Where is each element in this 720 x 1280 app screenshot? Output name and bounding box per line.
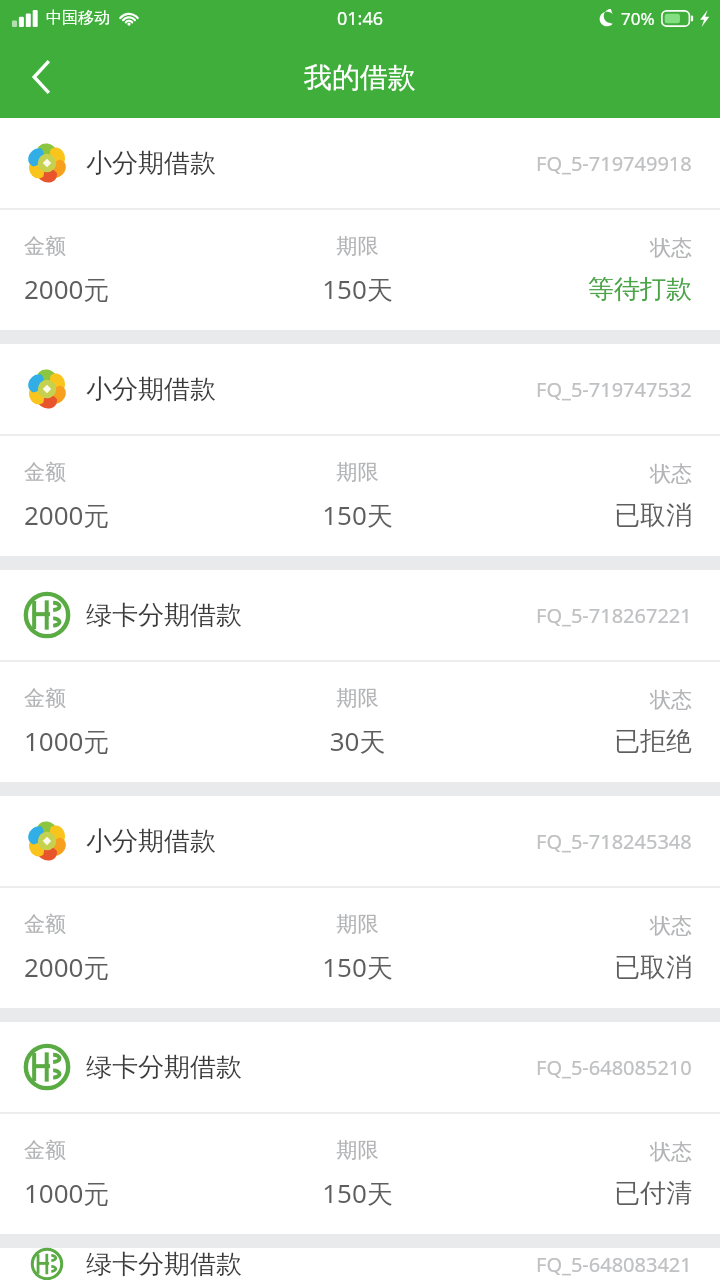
staticText: 150天 [246, 271, 469, 307]
staticText: 150天 [246, 1175, 469, 1211]
staticText: 期限 [246, 1137, 469, 1163]
staticText: 已拒绝 [469, 725, 692, 758]
button[interactable]: 小分期借款 [0, 796, 720, 1008]
staticText: 金额 [24, 1137, 246, 1163]
staticText: 期限 [246, 911, 469, 937]
staticText: 绿卡分期借款 [86, 1248, 242, 1280]
staticText: 150天 [246, 497, 469, 533]
staticText: FQ_5-718245348 [536, 828, 692, 855]
staticText: 已付清 [469, 1177, 692, 1210]
button[interactable]: 绿卡分期借款 [0, 1248, 720, 1280]
staticText: 状态 [469, 1139, 692, 1165]
staticText: 已取消 [469, 499, 692, 532]
staticText: 状态 [469, 913, 692, 939]
staticText: 期限 [246, 685, 469, 711]
staticText: FQ_5-718267221 [536, 602, 692, 629]
staticText: 期限 [246, 459, 469, 485]
staticText: 期限 [246, 233, 469, 259]
staticText: 绿卡分期借款 [86, 1051, 242, 1084]
staticText: 150天 [246, 949, 469, 985]
staticText: 金额 [24, 911, 246, 937]
staticText: 70% [621, 7, 655, 30]
staticText: 等待打款 [469, 273, 692, 306]
staticText: 状态 [469, 235, 692, 261]
staticText: 状态 [469, 687, 692, 713]
staticText: FQ_5-648085210 [536, 1054, 692, 1081]
staticText: 金额 [24, 459, 246, 485]
button[interactable]: 绿卡分期借款 [0, 1022, 720, 1234]
staticText: 金额 [24, 233, 246, 259]
staticText: 2000元 [24, 949, 246, 985]
staticText: 2000元 [24, 497, 246, 533]
staticText: 已取消 [469, 951, 692, 984]
staticText: FQ_5-719749918 [536, 150, 692, 177]
staticText: 1000元 [24, 1175, 246, 1211]
staticText: 中国移动 [46, 8, 110, 28]
staticText: 金额 [24, 685, 246, 711]
staticText: 30天 [246, 723, 469, 759]
staticText: 我的借款 [304, 60, 416, 95]
staticText: 小分期借款 [86, 373, 216, 406]
button[interactable]: 小分期借款 [0, 344, 720, 556]
staticText: 1000元 [24, 723, 246, 759]
button[interactable]: 小分期借款 [0, 118, 720, 330]
staticText: FQ_5-719747532 [536, 376, 692, 403]
staticText: FQ_5-648083421 [536, 1251, 692, 1278]
button[interactable]: Back [12, 48, 70, 106]
staticText: 2000元 [24, 271, 246, 307]
staticText: 状态 [469, 461, 692, 487]
staticText: 01:46 [337, 6, 384, 31]
staticText: 小分期借款 [86, 147, 216, 180]
button[interactable]: 绿卡分期借款 [0, 570, 720, 782]
staticText: 小分期借款 [86, 825, 216, 858]
staticText: 绿卡分期借款 [86, 599, 242, 632]
